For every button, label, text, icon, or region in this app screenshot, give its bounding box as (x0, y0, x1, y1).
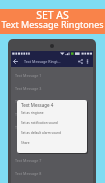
button[interactable]: Share (17, 138, 87, 148)
staticText: Set as default alarm sound (21, 131, 61, 135)
button[interactable]: Text Message 3 (11, 82, 93, 95)
button[interactable]: Set as ringtone (17, 108, 87, 118)
button[interactable]: Text Message 5 (11, 108, 93, 121)
staticText: Text Message 3 (15, 86, 42, 91)
button[interactable]: Share (77, 58, 84, 65)
staticText: Share (21, 141, 30, 145)
button[interactable]: Back (11, 57, 20, 66)
staticText: Text Message 4 (21, 102, 54, 108)
staticText: Text Message 4 (15, 99, 42, 104)
button[interactable]: Text Message 7 (11, 154, 93, 167)
button[interactable]: Text Message 8 (11, 167, 93, 180)
staticText: Text Message 7 (15, 158, 42, 163)
button[interactable]: More options (84, 58, 91, 65)
button[interactable]: Text Message 6 (11, 121, 93, 134)
button[interactable]: Set as notification sound (17, 118, 87, 128)
button[interactable]: Text Message 1 (11, 69, 93, 82)
staticText: Text Message 8 (15, 171, 42, 176)
button[interactable]: Text Message 4 (11, 95, 93, 108)
staticText: Set as notification sound (21, 121, 58, 125)
button[interactable]: Set as default alarm sound (17, 128, 87, 138)
staticText: Text Message Ringtones (1, 18, 104, 30)
staticText: Text Message Ringt... (24, 59, 61, 64)
staticText: SET AS (36, 8, 69, 22)
staticText: Text Message 5 (15, 112, 42, 117)
staticText: Text Message 6 (15, 125, 42, 130)
staticText: Text Message 1 (15, 73, 42, 78)
staticText: Set as ringtone (21, 111, 44, 115)
